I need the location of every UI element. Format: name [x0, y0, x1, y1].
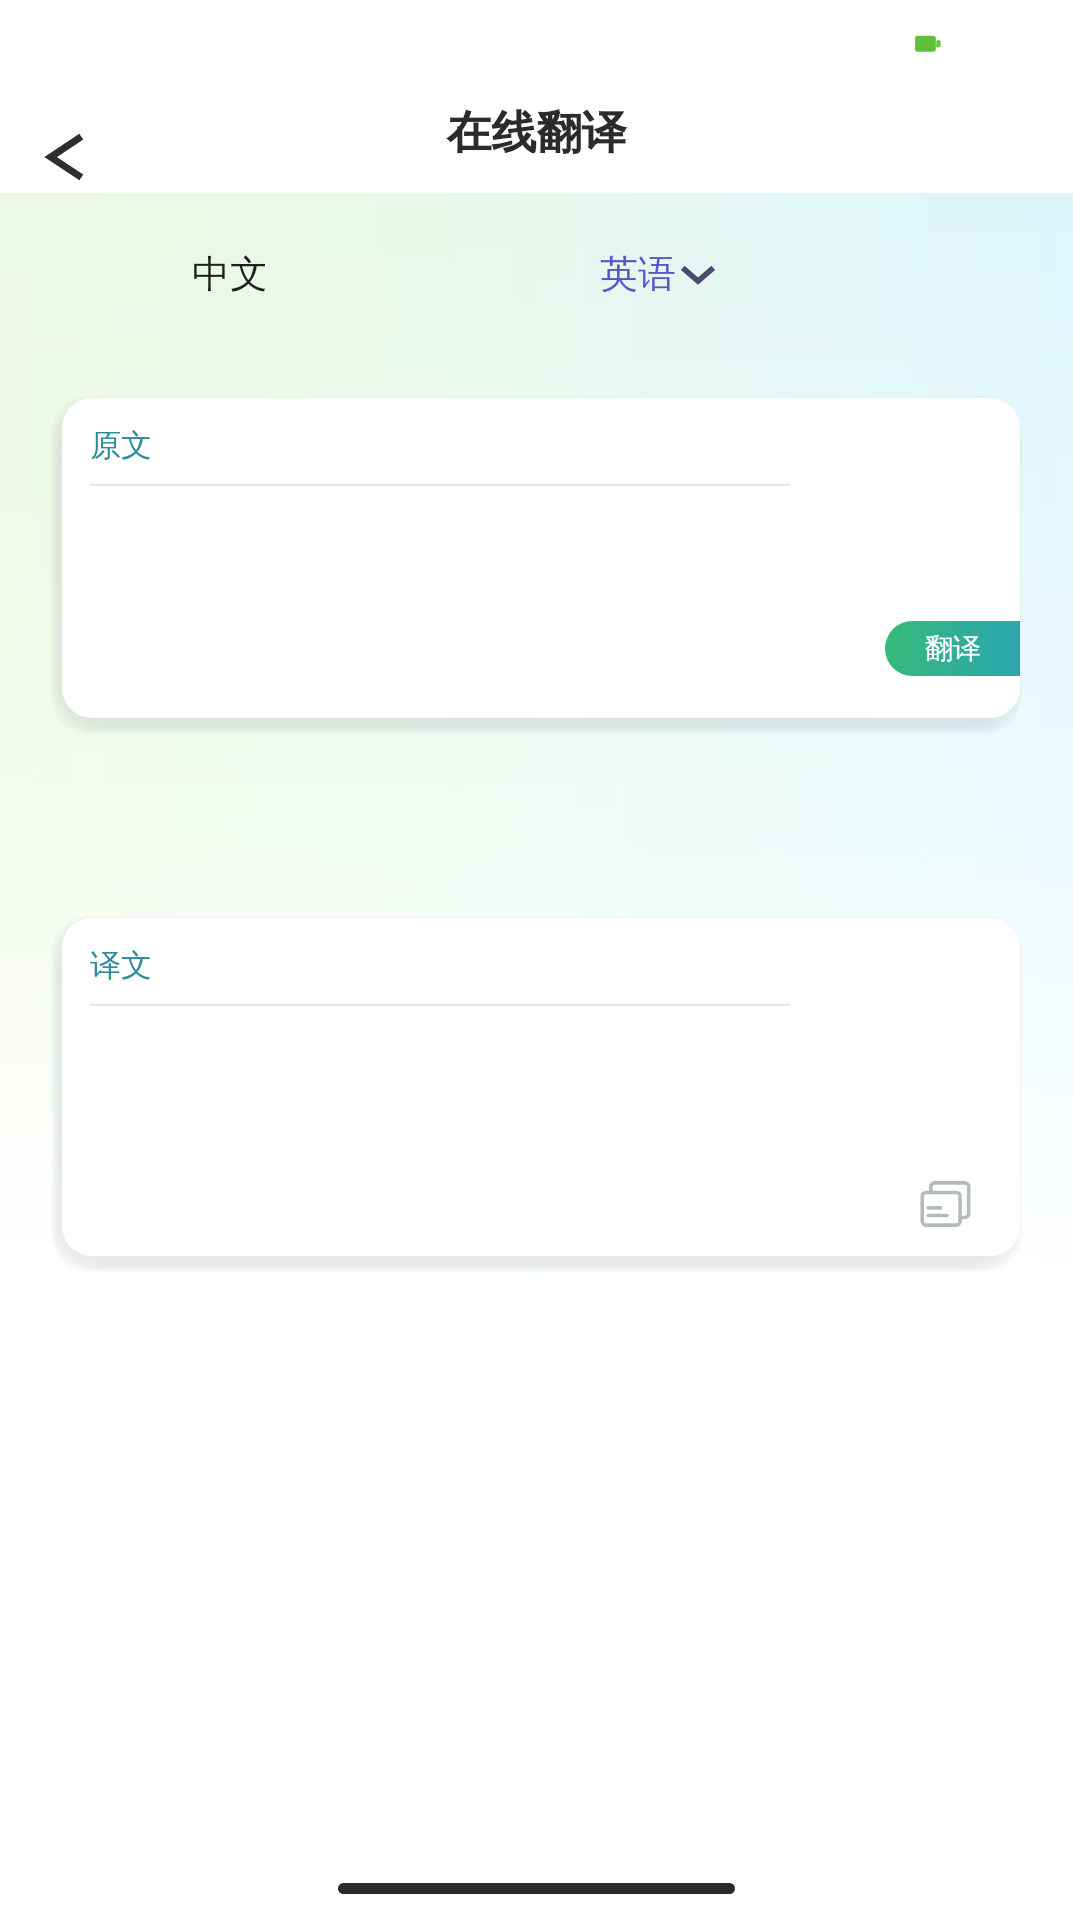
staticText: 原文	[90, 426, 152, 465]
staticText: 在线翻译	[0, 105, 1073, 162]
button[interactable]: 中文	[120, 235, 340, 313]
button[interactable]: 译文	[62, 918, 1020, 1256]
button[interactable]: 原文	[62, 398, 1020, 718]
staticText: 翻译	[925, 631, 981, 666]
button[interactable]: 英语	[600, 235, 720, 313]
staticText: 英语	[600, 250, 676, 298]
staticText: 中文	[192, 250, 268, 298]
button[interactable]: Copy	[910, 1168, 982, 1240]
button[interactable]: Back	[28, 110, 112, 194]
staticText: 译文	[90, 946, 152, 985]
button[interactable]: 翻译	[885, 621, 1020, 676]
